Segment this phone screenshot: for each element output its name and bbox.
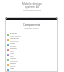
- button[interactable]: Buttons: [5, 32, 58, 37]
- button[interactable]: Text fields: [5, 37, 58, 42]
- staticText: scrollable: [10, 70, 18, 72]
- staticText: bottom: [10, 65, 16, 67]
- button[interactable]: Cards: [5, 42, 58, 47]
- button[interactable]: Sheets: [5, 62, 58, 67]
- staticText: Buttons: [10, 32, 17, 35]
- staticText: Components: [5, 23, 58, 27]
- button[interactable]: Lists: [5, 52, 58, 57]
- button[interactable]: Tabs: [5, 67, 58, 72]
- staticText: input styles: [10, 40, 19, 42]
- staticText: Cards: [10, 42, 16, 45]
- staticText: Mobile design system kit: [0, 2, 64, 9]
- staticText: alerts: [10, 50, 15, 52]
- staticText: Text fields: [10, 37, 19, 40]
- staticText: Sheets: [10, 62, 16, 65]
- button[interactable]: Dialogs: [5, 47, 58, 52]
- staticText: component library: [0, 9, 64, 12]
- staticText: elevated: [10, 45, 17, 47]
- staticText: building blocks: [5, 27, 58, 30]
- staticText: dropdown: [10, 60, 18, 62]
- button[interactable]: Menus: [5, 57, 58, 62]
- staticText: filled, outlined: [10, 35, 21, 37]
- staticText: Lists: [10, 52, 14, 55]
- staticText: Dialogs: [10, 47, 17, 50]
- staticText: Tabs: [10, 67, 15, 70]
- button[interactable]: App bar: [5, 17, 58, 20]
- staticText: Menus: [10, 57, 17, 60]
- staticText: rows: [10, 55, 14, 57]
